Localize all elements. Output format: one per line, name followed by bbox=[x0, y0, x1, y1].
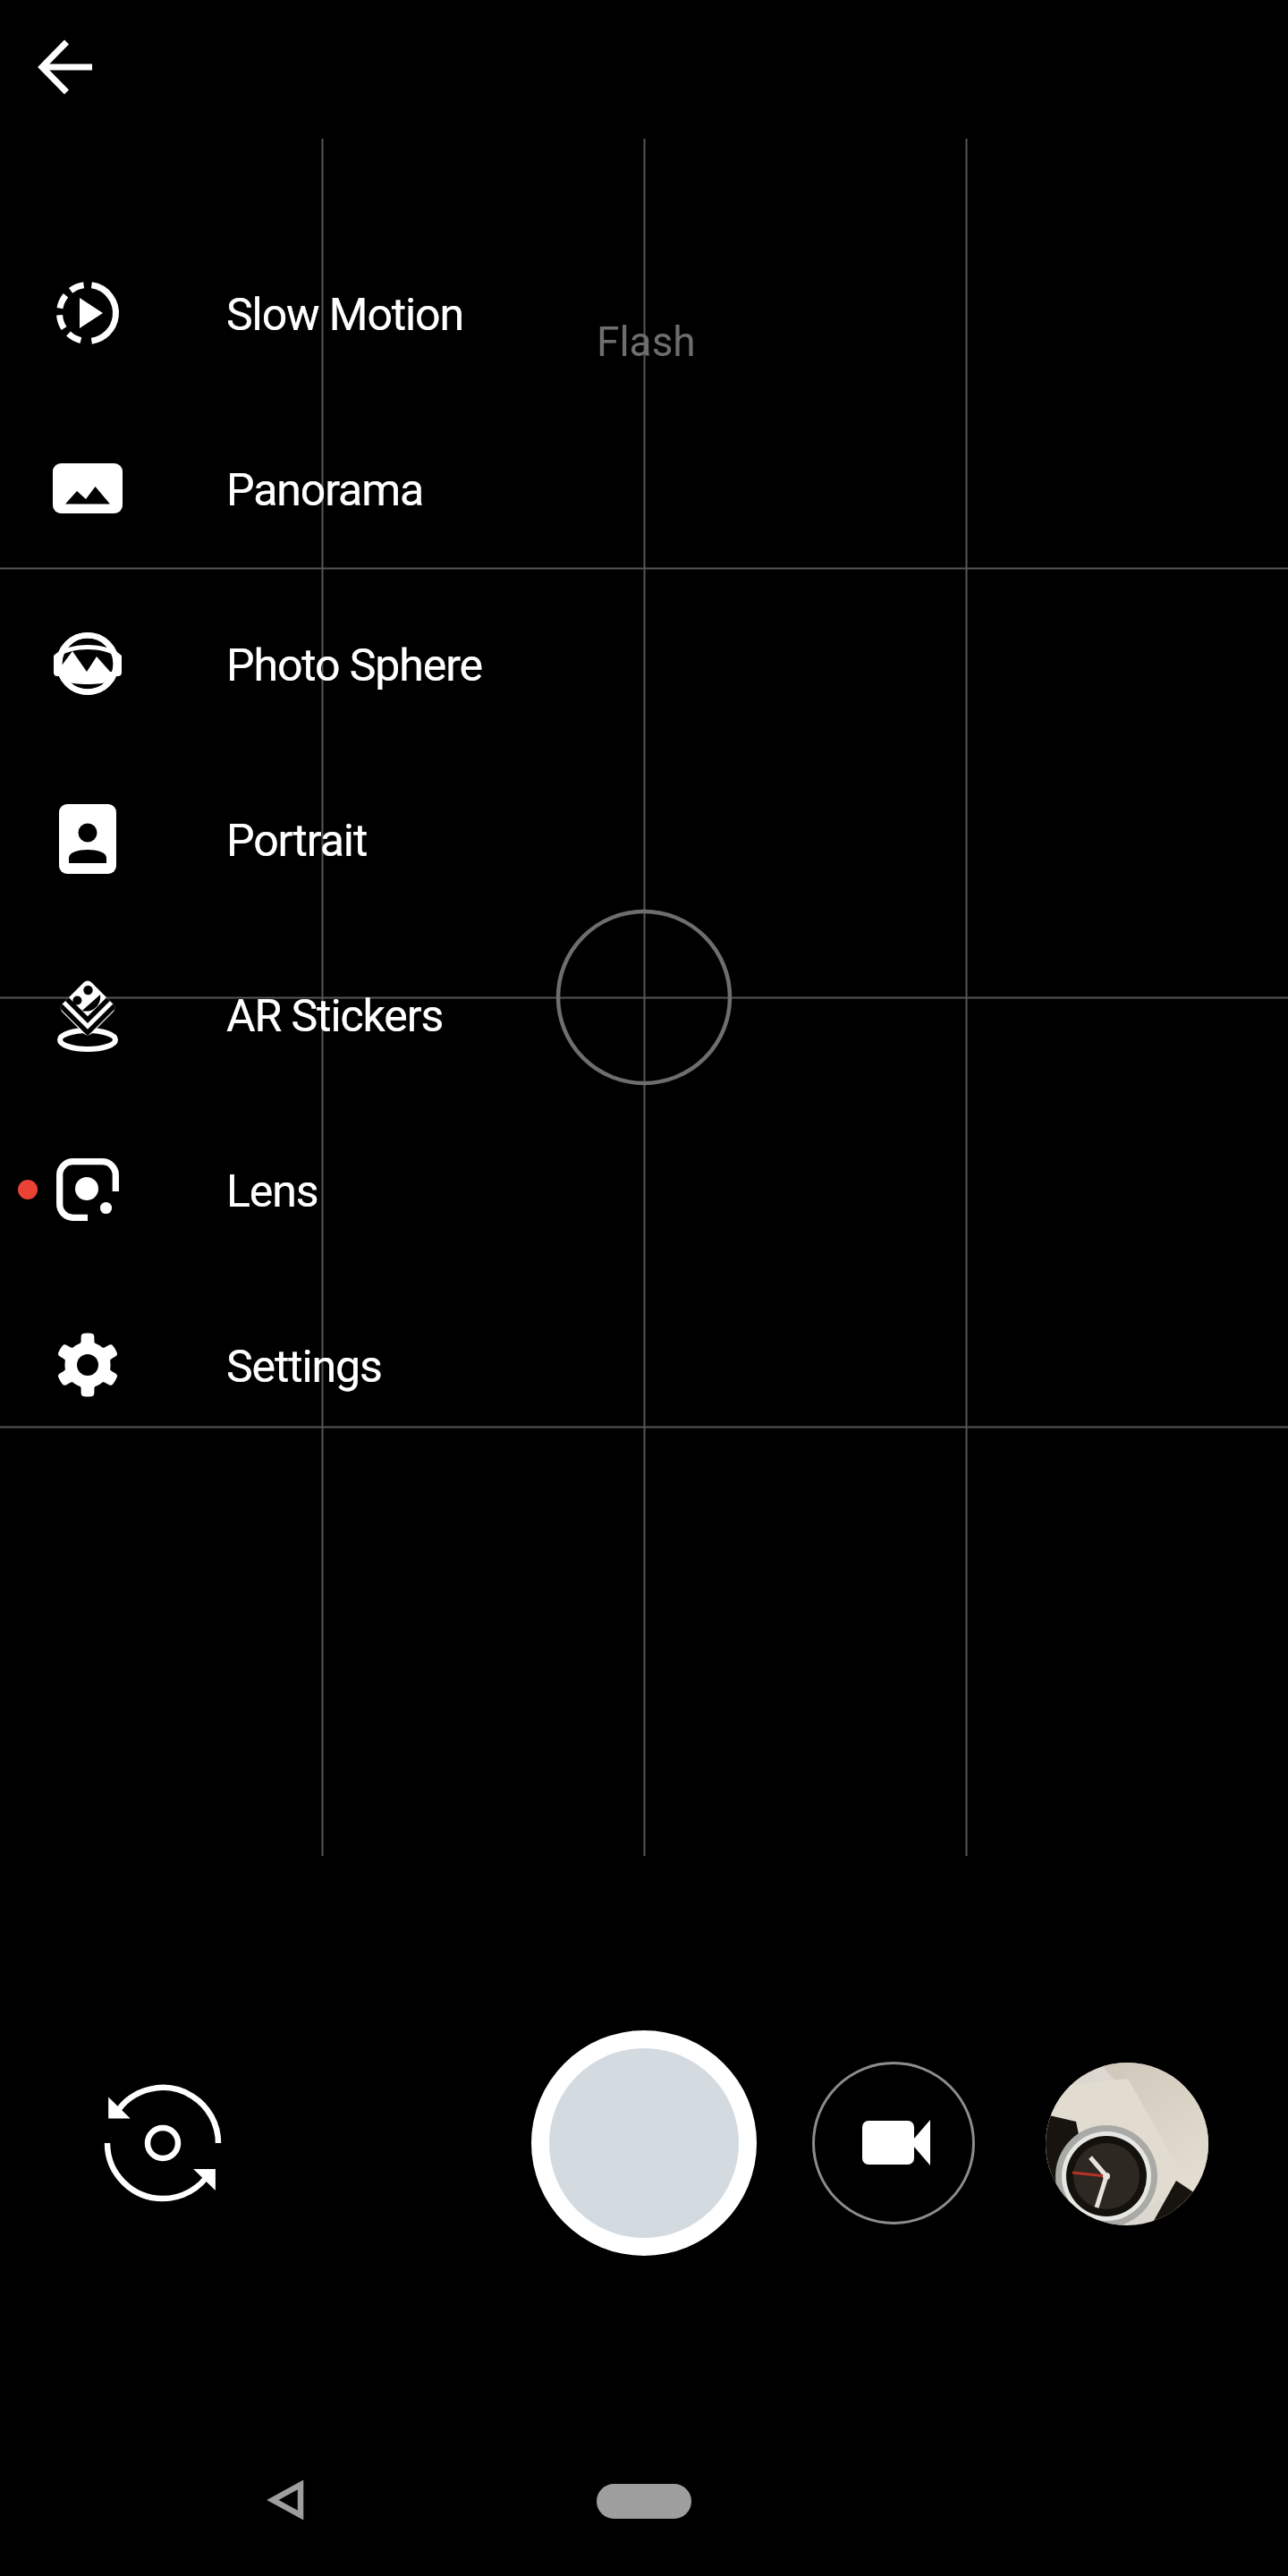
button[interactable]: Back bbox=[241, 2455, 331, 2545]
button[interactable]: Shutter bbox=[531, 2030, 757, 2256]
button[interactable]: Switch camera bbox=[100, 2080, 225, 2206]
button[interactable]: Home bbox=[597, 2484, 691, 2519]
staticText: Settings bbox=[226, 1341, 382, 1394]
button[interactable]: Lens bbox=[0, 1102, 519, 1277]
button[interactable]: Panorama bbox=[0, 401, 519, 576]
staticText: Photo Sphere bbox=[226, 640, 482, 692]
button[interactable]: Portrait bbox=[0, 751, 519, 927]
staticText: Lens bbox=[226, 1165, 318, 1218]
button[interactable]: Photo Sphere bbox=[0, 576, 519, 751]
button[interactable]: Slow Motion bbox=[0, 225, 519, 401]
button[interactable]: Video mode bbox=[812, 2062, 975, 2224]
button[interactable]: Flash bbox=[538, 306, 753, 377]
staticText: Slow Motion bbox=[226, 289, 464, 342]
button[interactable]: Back bbox=[22, 22, 112, 112]
button[interactable]: Last photo bbox=[1046, 2063, 1208, 2225]
staticText: Flash bbox=[597, 318, 696, 366]
staticText: Panorama bbox=[226, 464, 424, 517]
button[interactable]: AR Stickers bbox=[0, 927, 519, 1102]
staticText: AR Stickers bbox=[226, 990, 444, 1043]
staticText: Portrait bbox=[226, 815, 368, 868]
button[interactable]: Settings bbox=[0, 1277, 519, 1453]
